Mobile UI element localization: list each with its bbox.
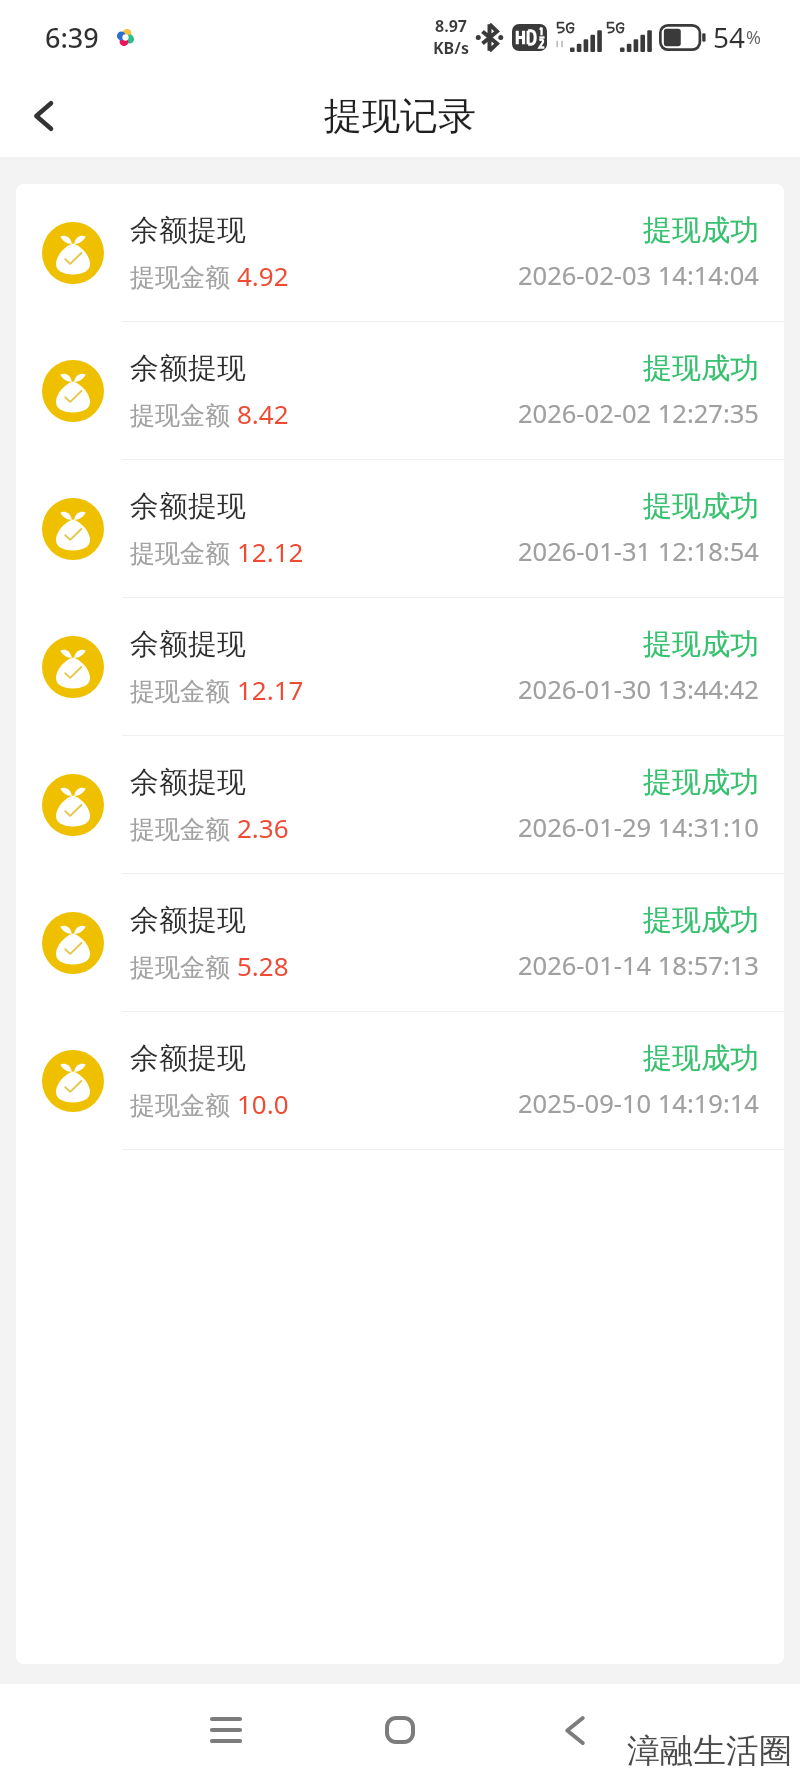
- staticText: 4.92: [237, 258, 289, 293]
- button[interactable]: 余额提现: [16, 1012, 784, 1149]
- button[interactable]: 余额提现: [16, 736, 784, 873]
- staticText: 提现成功: [643, 488, 759, 525]
- staticText: 2026-01-14 18:57:13: [518, 948, 759, 983]
- staticText: 2025-09-10 14:19:14: [518, 1086, 759, 1121]
- staticText: 6:39: [45, 19, 99, 56]
- button[interactable]: 余额提现: [16, 322, 784, 459]
- button[interactable]: 余额提现: [16, 460, 784, 597]
- staticText: 提现成功: [643, 902, 759, 939]
- staticText: 提现成功: [643, 1040, 759, 1077]
- staticText: 漳融生活圈: [627, 1730, 792, 1772]
- staticText: %: [746, 25, 761, 50]
- staticText: 提现金额: [130, 397, 237, 431]
- staticText: 余额提现: [130, 1040, 246, 1077]
- staticText: 余额提现: [130, 764, 246, 801]
- staticText: 2026-01-31 12:18:54: [518, 534, 759, 569]
- staticText: 提现成功: [643, 626, 759, 663]
- staticText: 提现记录: [324, 92, 476, 140]
- staticText: 提现成功: [643, 212, 759, 249]
- staticText: 2026-01-30 13:44:42: [518, 672, 759, 707]
- staticText: 提现成功: [643, 764, 759, 801]
- staticText: 5.28: [237, 948, 289, 983]
- staticText: 余额提现: [130, 350, 246, 387]
- staticText: 提现金额: [130, 1087, 237, 1121]
- staticText: 余额提现: [130, 212, 246, 249]
- staticText: 余额提现: [130, 902, 246, 939]
- button[interactable]: Back: [539, 1694, 611, 1766]
- staticText: 12.17: [237, 672, 304, 707]
- button[interactable]: 余额提现: [16, 184, 784, 321]
- staticText: 2026-01-29 14:31:10: [518, 810, 759, 845]
- staticText: 提现金额: [130, 811, 237, 845]
- staticText: 余额提现: [130, 626, 246, 663]
- button[interactable]: Recent apps: [190, 1694, 262, 1766]
- button[interactable]: 余额提现: [16, 874, 784, 1011]
- staticText: 12.12: [237, 534, 304, 569]
- button[interactable]: Back: [13, 85, 75, 147]
- staticText: 10.0: [237, 1086, 289, 1121]
- staticText: 8.42: [237, 396, 289, 431]
- staticText: 提现金额: [130, 535, 237, 569]
- staticText: 提现金额: [130, 673, 237, 707]
- staticText: 8.97: [435, 15, 467, 37]
- staticText: 余额提现: [130, 488, 246, 525]
- button[interactable]: Home: [364, 1694, 436, 1766]
- staticText: 54: [713, 18, 746, 56]
- staticText: 提现金额: [130, 259, 237, 293]
- staticText: 2.36: [237, 810, 289, 845]
- staticText: 提现成功: [643, 350, 759, 387]
- button[interactable]: 余额提现: [16, 598, 784, 735]
- staticText: 2026-02-02 12:27:35: [518, 396, 759, 431]
- staticText: 提现金额: [130, 949, 237, 983]
- staticText: KB/s: [433, 37, 469, 59]
- staticText: 2026-02-03 14:14:04: [518, 258, 759, 293]
